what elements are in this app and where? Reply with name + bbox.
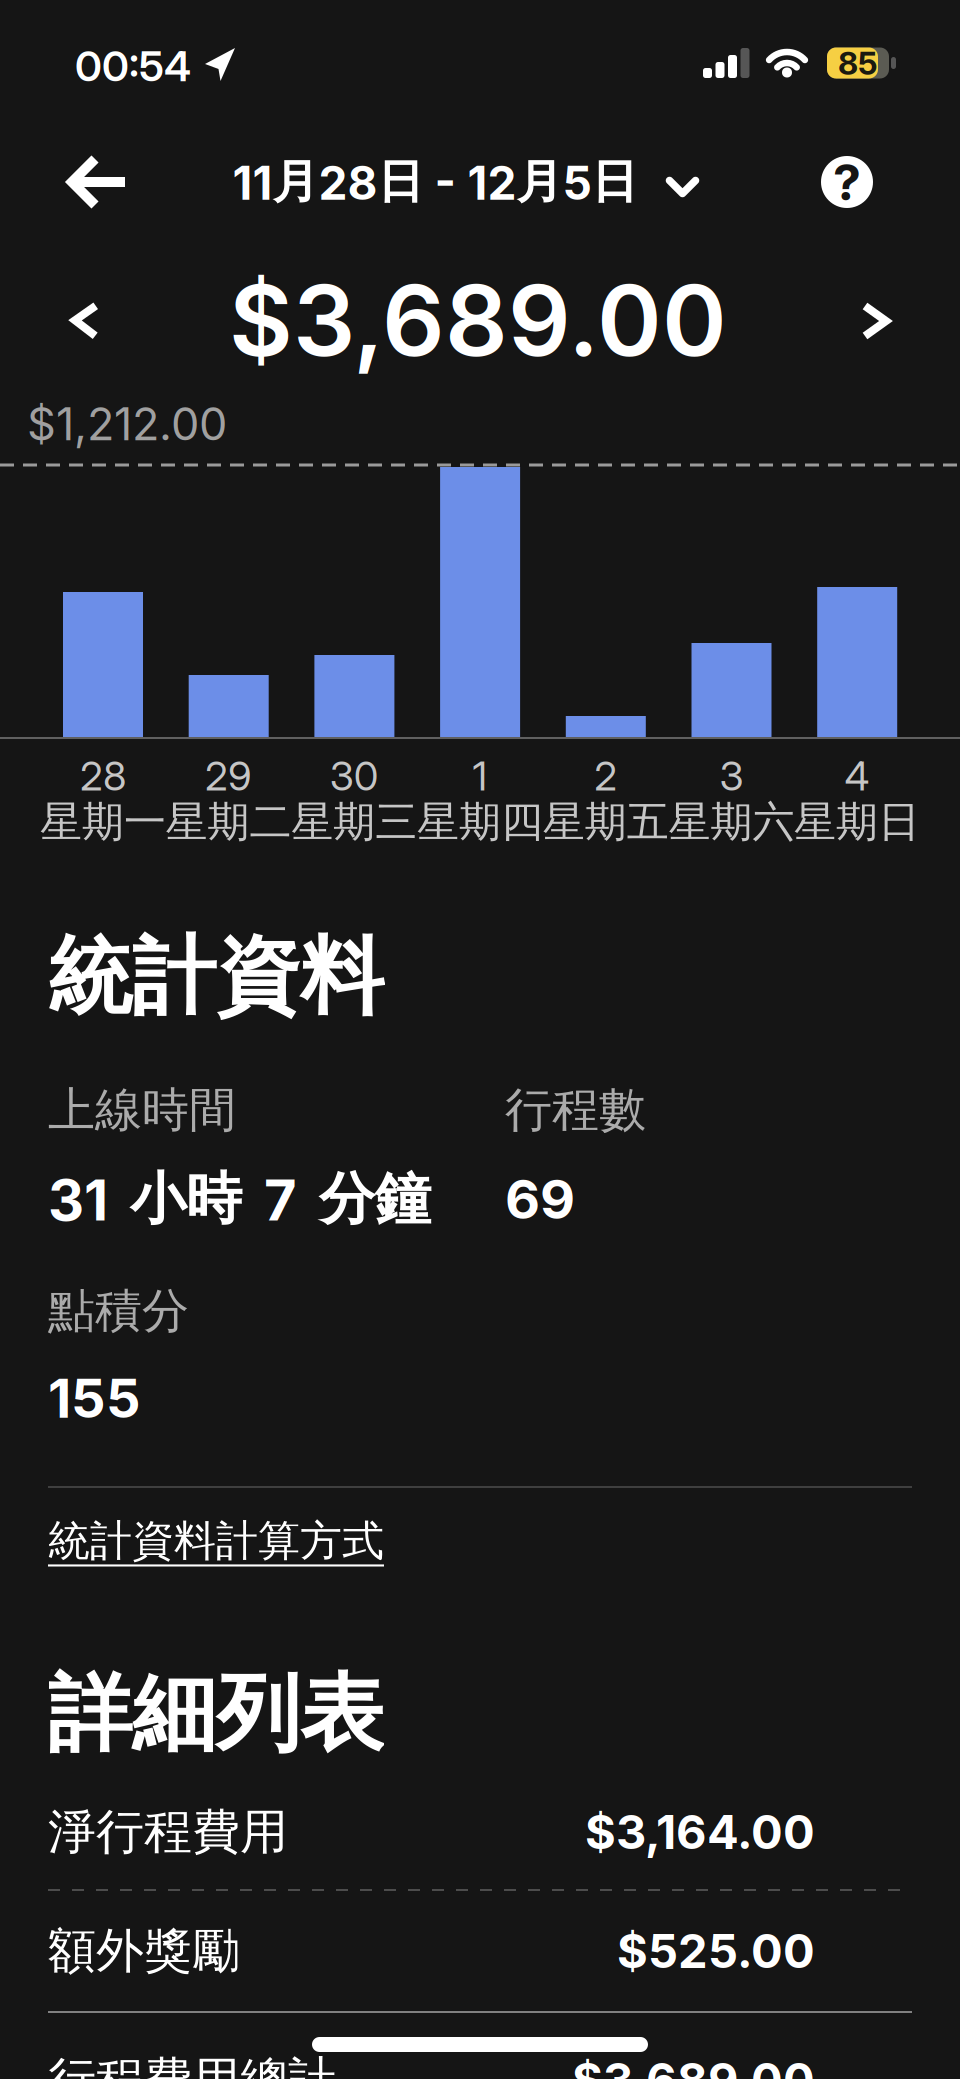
staticText: 點積分 xyxy=(48,1282,189,1340)
staticText: 行程數 xyxy=(505,1081,646,1139)
staticText: 3 xyxy=(719,752,743,800)
staticText: 29 xyxy=(205,752,252,800)
staticText: 星期六 xyxy=(668,796,794,848)
staticText: 星期日 xyxy=(794,796,920,848)
button[interactable] xyxy=(65,151,129,213)
staticText: 31 小時 7 分鐘 xyxy=(48,1165,431,1233)
staticText: 1 xyxy=(472,752,487,800)
staticText: 星期三 xyxy=(291,796,417,848)
staticText: 星期四 xyxy=(417,796,543,848)
staticText: 詳細列表 xyxy=(48,1662,384,1766)
staticText: 28 xyxy=(80,752,126,800)
staticText: 統計資料 xyxy=(48,925,384,1029)
staticText: 星期五 xyxy=(543,796,669,848)
staticText: 11月28日 - 12月5日 xyxy=(232,154,637,210)
staticText: $1,212.00 xyxy=(27,397,227,451)
staticText: 星期一 xyxy=(40,796,166,848)
button[interactable] xyxy=(853,295,893,347)
button[interactable]: 統計資料計算方式 xyxy=(48,1515,384,1567)
staticText: 行程費用總計 xyxy=(48,2050,336,2079)
staticText: 69 xyxy=(505,1167,575,1231)
staticText: 85 xyxy=(838,44,878,82)
staticText: $525.00 xyxy=(617,1923,815,1979)
staticText: 00:54 xyxy=(75,41,191,91)
button[interactable] xyxy=(69,295,109,347)
button[interactable]: ? xyxy=(821,156,873,208)
button[interactable]: 11月28日 - 12月5日 xyxy=(232,154,699,210)
staticText: 星期二 xyxy=(166,796,292,848)
staticText: 淨行程費用 xyxy=(48,1802,288,1861)
staticText: 155 xyxy=(48,1366,141,1430)
staticText: 上線時間 xyxy=(48,1081,236,1139)
staticText: $3,689.00 xyxy=(229,262,727,378)
staticText: 30 xyxy=(330,752,379,800)
staticText: 4 xyxy=(845,752,870,800)
staticText: $3,164.00 xyxy=(585,1804,815,1860)
staticText: ? xyxy=(833,152,861,211)
staticText: 額外獎勵 xyxy=(48,1921,240,1980)
staticText: 2 xyxy=(594,752,617,800)
staticText: $3,689.00 xyxy=(572,2052,815,2079)
staticText: 統計資料計算方式 xyxy=(48,1515,384,1567)
